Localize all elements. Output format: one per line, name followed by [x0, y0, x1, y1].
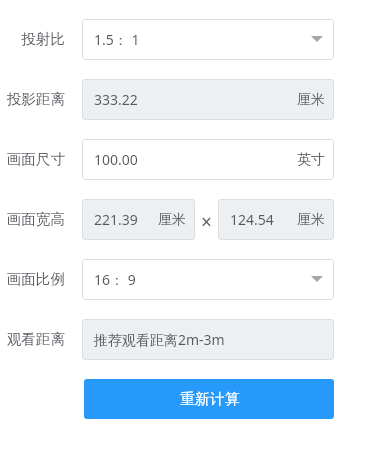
staticText: 推荐观看距离2m-3m — [94, 330, 225, 349]
button[interactable]: 100.00 — [82, 139, 334, 180]
staticText: 观看距离 — [0, 330, 65, 348]
button[interactable]: 221.39 — [82, 199, 195, 240]
staticText: × — [201, 209, 212, 235]
staticText: 1.5： 1 — [94, 30, 140, 49]
button[interactable]: 16： 9 — [82, 259, 334, 300]
button[interactable]: 124.54 — [218, 199, 334, 240]
staticText: 画面宽高 — [0, 210, 65, 228]
staticText: 厘米 — [297, 211, 325, 229]
button[interactable]: 推荐观看距离2m-3m — [82, 319, 334, 360]
button[interactable]: 333.22 — [82, 79, 334, 120]
staticText: 100.00 — [94, 150, 138, 169]
staticText: 画面比例 — [0, 270, 65, 288]
button[interactable]: 1.5： 1 — [82, 19, 334, 60]
staticText: 画面尺寸 — [0, 150, 65, 168]
other: Open dropdown — [311, 36, 323, 42]
staticText: 投影距离 — [0, 90, 65, 108]
other: Open dropdown — [311, 276, 323, 282]
staticText: 英寸 — [297, 151, 325, 169]
staticText: 投射比 — [0, 30, 65, 48]
staticText: 16： 9 — [94, 270, 136, 289]
staticText: 333.22 — [94, 90, 138, 109]
staticText: 221.39 — [94, 210, 138, 229]
staticText: 重新计算 — [180, 390, 240, 409]
button[interactable]: 重新计算 — [84, 379, 334, 419]
staticText: 厘米 — [297, 91, 325, 109]
staticText: 124.54 — [230, 210, 274, 229]
staticText: 厘米 — [158, 211, 186, 229]
